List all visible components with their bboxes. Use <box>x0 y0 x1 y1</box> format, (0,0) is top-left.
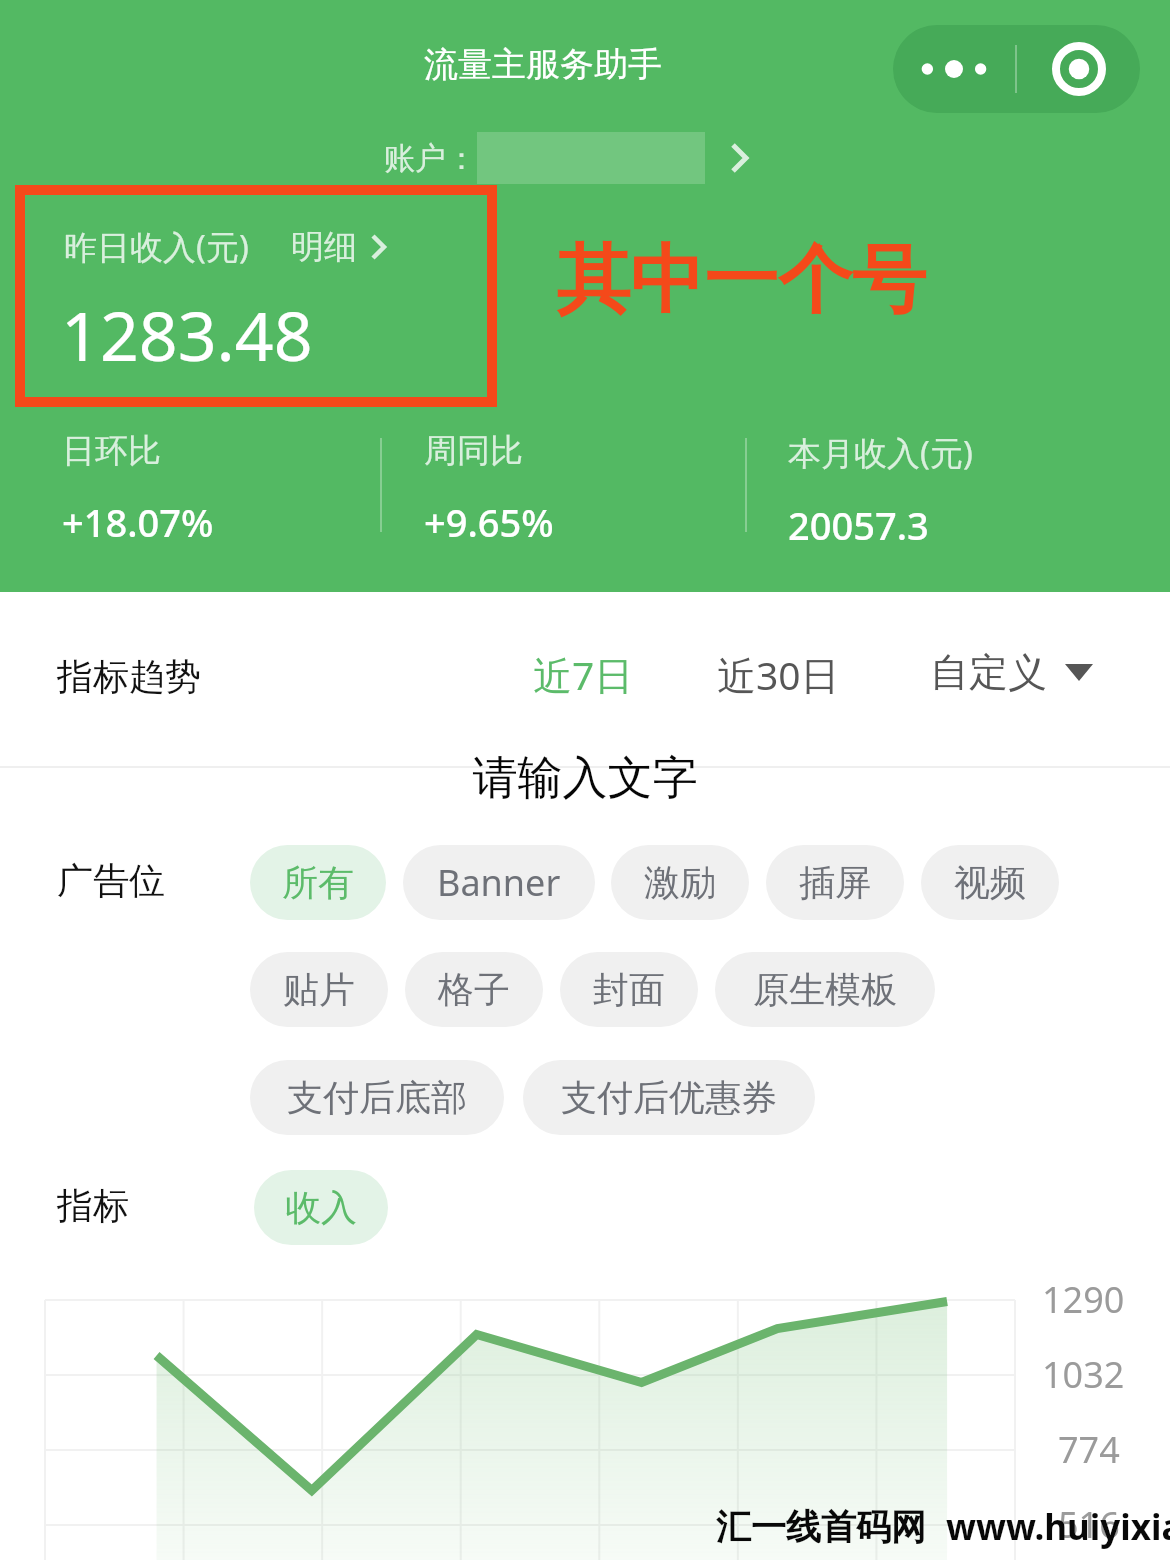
button[interactable]: 原生模板 <box>715 952 935 1027</box>
staticText: 收入 <box>285 1185 357 1230</box>
button[interactable]: 近30日 <box>717 648 840 701</box>
staticText: 格子 <box>438 967 510 1012</box>
button[interactable]: 账户： <box>384 132 748 184</box>
button[interactable]: 格子 <box>405 952 543 1027</box>
button[interactable]: 近7日 <box>533 648 634 701</box>
staticText: 其中一个号 <box>556 234 926 327</box>
button[interactable]: 封面 <box>560 952 698 1027</box>
staticText: 原生模板 <box>753 967 897 1012</box>
button[interactable]: Banner <box>403 845 595 920</box>
staticText: 指标趋势 <box>57 654 201 699</box>
staticText: 流量主服务助手 <box>424 43 662 86</box>
button[interactable]: 插屏 <box>766 845 904 920</box>
button[interactable]: Close mini program <box>1017 25 1140 113</box>
staticText: 1290 <box>1042 1275 1125 1324</box>
button[interactable]: 贴片 <box>250 952 388 1027</box>
staticText: 近30日 <box>717 648 840 701</box>
button[interactable]: 自定义 <box>930 648 1093 697</box>
staticText: Banner <box>437 858 561 907</box>
staticText: 本月收入(元) <box>788 430 973 475</box>
button[interactable]: 支付后底部 <box>250 1060 504 1135</box>
staticText: 日环比 <box>62 430 161 472</box>
staticText: 插屏 <box>799 860 871 905</box>
staticText: 账户： <box>384 139 477 178</box>
staticText: 所有 <box>282 860 354 905</box>
button[interactable]: 激励 <box>611 845 749 920</box>
staticText: 贴片 <box>283 967 355 1012</box>
button[interactable]: 昨日收入(元) <box>64 224 386 269</box>
staticText: 封面 <box>593 967 665 1012</box>
staticText: 516 <box>1058 1500 1120 1549</box>
staticText: 明细 <box>291 226 357 268</box>
staticText: 周同比 <box>424 430 523 472</box>
staticText: 774 <box>1058 1425 1120 1474</box>
staticText: +9.65% <box>424 496 554 548</box>
staticText: 汇一线首码网 <box>716 1505 926 1549</box>
staticText: 指标 <box>57 1183 129 1228</box>
staticText: 激励 <box>644 860 716 905</box>
staticText: 视频 <box>954 860 1026 905</box>
staticText: 昨日收入(元) <box>64 224 249 269</box>
staticText: 自定义 <box>930 648 1047 697</box>
staticText: +18.07% <box>62 496 214 548</box>
button[interactable]: 所有 <box>250 845 386 920</box>
staticText: www.huiyixian.com <box>946 1503 1170 1551</box>
staticText: 1283.48 <box>61 288 313 381</box>
button[interactable]: 支付后优惠券 <box>523 1060 815 1135</box>
staticText: 1032 <box>1042 1350 1125 1399</box>
staticText: 支付后优惠券 <box>561 1075 777 1120</box>
button[interactable]: More options <box>893 25 1015 113</box>
button[interactable]: 收入 <box>254 1170 388 1245</box>
staticText: 请输入文字 <box>0 750 1170 807</box>
staticText: 支付后底部 <box>287 1075 467 1120</box>
staticText: 近7日 <box>533 648 634 701</box>
staticText: 广告位 <box>57 858 165 903</box>
button[interactable]: 视频 <box>921 845 1059 920</box>
staticText: 20057.3 <box>788 499 929 551</box>
